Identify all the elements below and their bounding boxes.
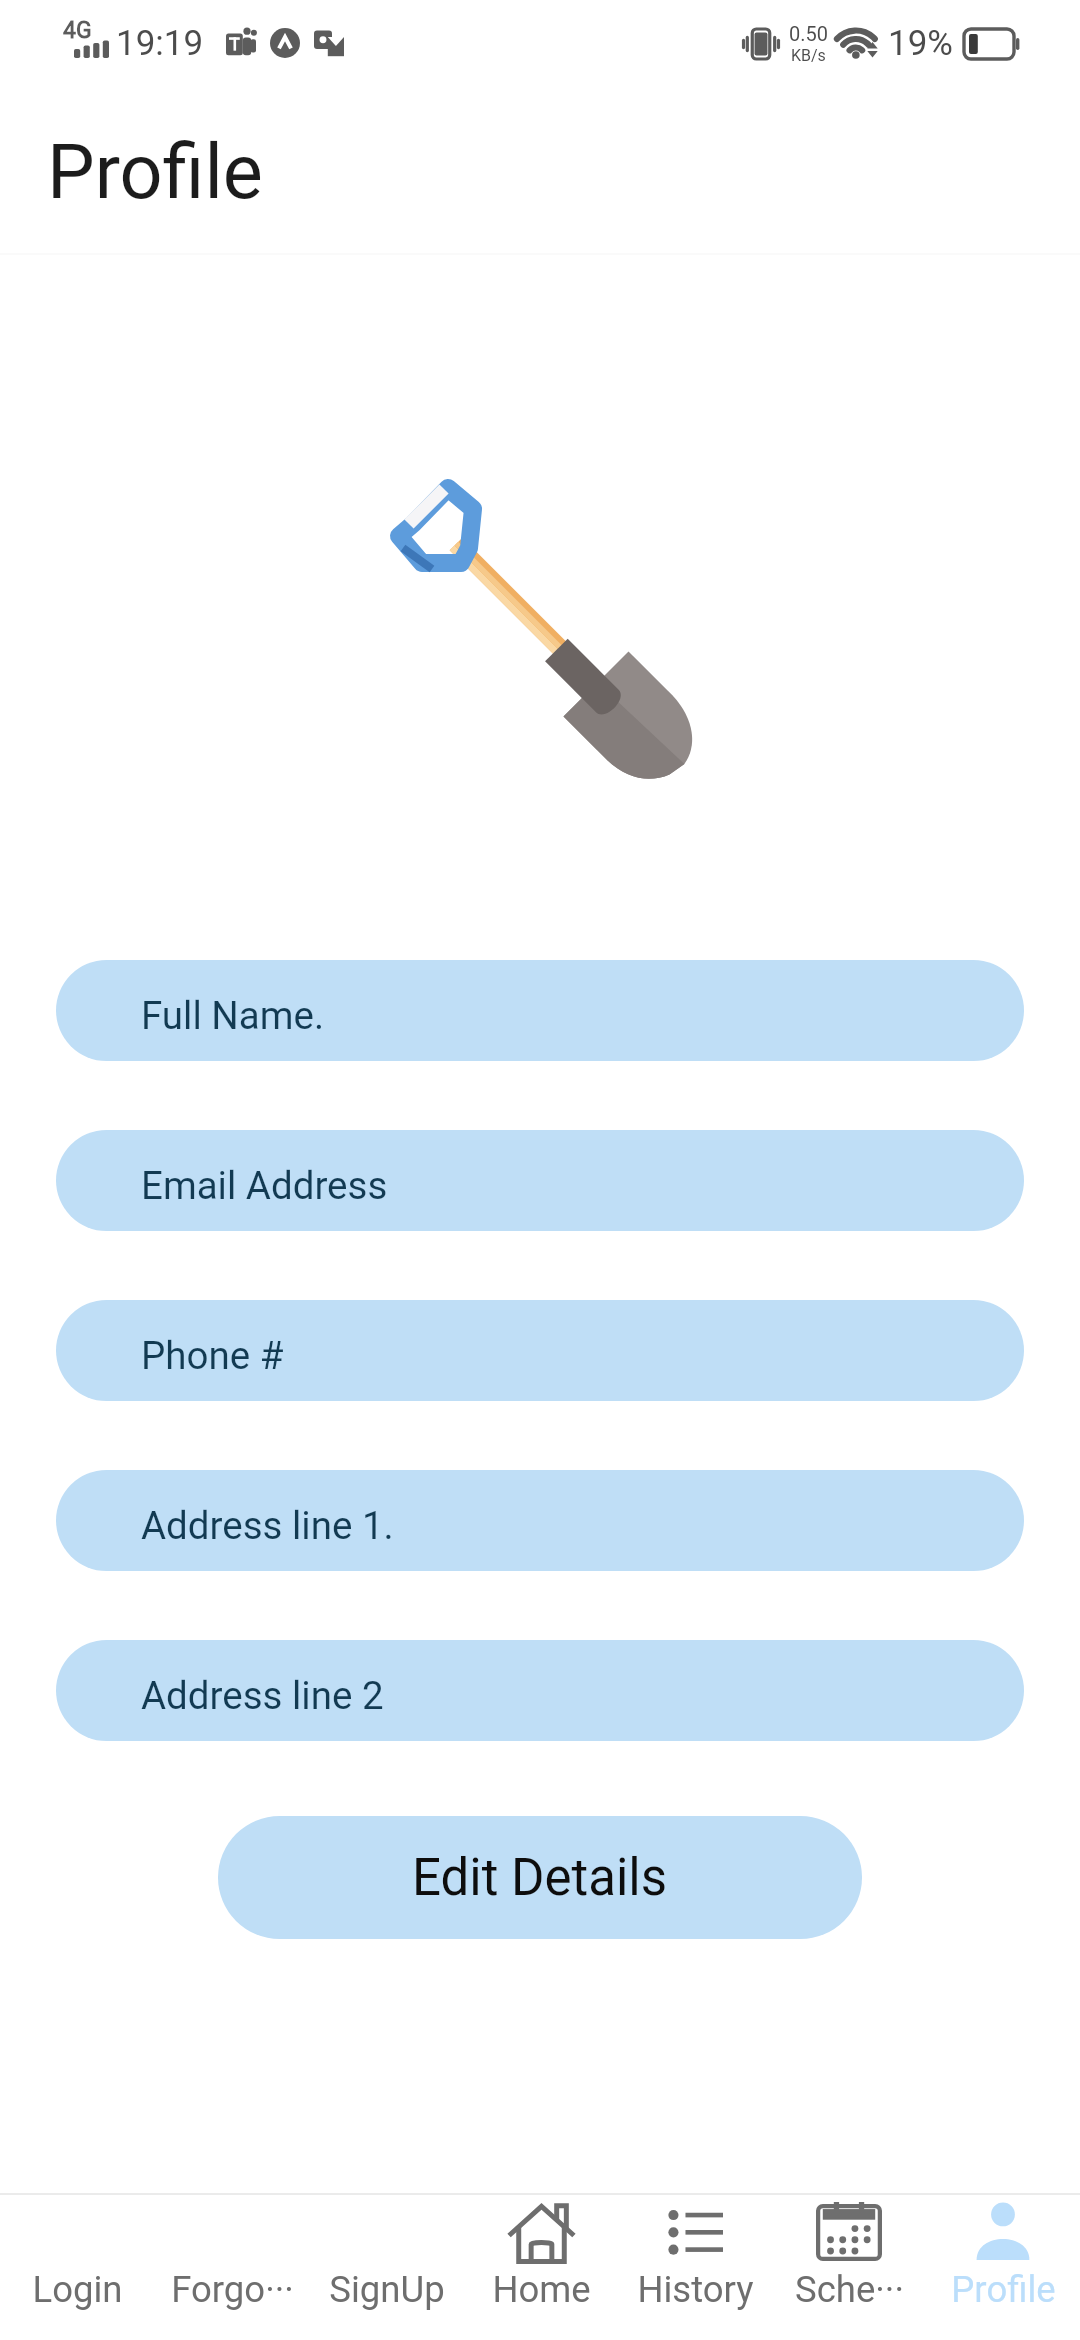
button[interactable]: Phone # bbox=[56, 1300, 1024, 1401]
staticText: Phone # bbox=[141, 1333, 284, 1378]
button[interactable]: Address line 2 bbox=[56, 1640, 1024, 1741]
button[interactable]: Forgo··· bbox=[155, 2195, 310, 2340]
staticText: Email Address bbox=[141, 1163, 388, 1208]
staticText: 4G bbox=[63, 17, 92, 44]
staticText: Sche··· bbox=[795, 2268, 904, 2311]
staticText: Address line 1. bbox=[141, 1503, 394, 1548]
button[interactable]: Sche··· bbox=[772, 2195, 926, 2340]
staticText: Profile bbox=[47, 128, 263, 216]
staticText: Login bbox=[32, 2268, 123, 2311]
button[interactable]: Edit Details bbox=[218, 1816, 862, 1939]
staticText: Forgo··· bbox=[171, 2268, 294, 2311]
staticText: 19% bbox=[888, 23, 953, 64]
button[interactable]: History bbox=[618, 2195, 772, 2340]
staticText: Address line 2 bbox=[141, 1673, 384, 1718]
staticText: Profile bbox=[951, 2268, 1056, 2311]
staticText: Home bbox=[492, 2268, 591, 2311]
button[interactable]: Full Name. bbox=[56, 960, 1024, 1061]
button[interactable]: Login bbox=[0, 2195, 155, 2340]
staticText: Full Name. bbox=[141, 993, 325, 1038]
button[interactable]: Email Address bbox=[56, 1130, 1024, 1231]
staticText: 19:19 bbox=[116, 23, 204, 64]
staticText: 0.50 bbox=[789, 22, 828, 45]
staticText: KB/s bbox=[791, 46, 826, 65]
button[interactable]: Home bbox=[464, 2195, 618, 2340]
staticText: Edit Details bbox=[412, 1848, 668, 1908]
button[interactable]: Address line 1. bbox=[56, 1470, 1024, 1571]
button[interactable]: Profile bbox=[926, 2195, 1080, 2340]
staticText: History bbox=[637, 2268, 754, 2311]
staticText: SignUp bbox=[329, 2268, 445, 2311]
button[interactable]: SignUp bbox=[310, 2195, 464, 2340]
